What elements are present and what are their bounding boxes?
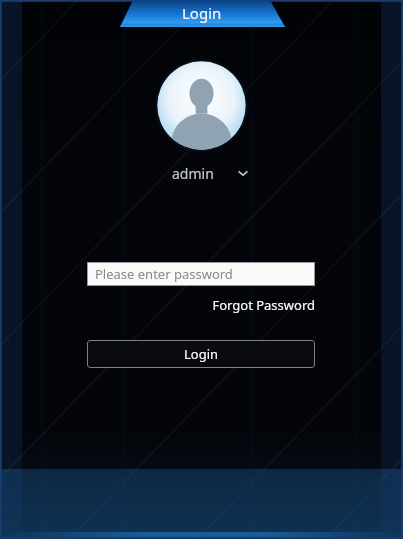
- staticText: Login: [182, 3, 222, 23]
- staticText: Please enter password: [95, 265, 233, 283]
- button[interactable]: Login: [87, 340, 315, 368]
- staticText: admin: [172, 164, 214, 183]
- staticText: Forgot Password: [212, 296, 315, 314]
- button[interactable]: admin: [150, 160, 260, 186]
- button[interactable]: Forgot Password: [195, 294, 315, 316]
- button[interactable]: Please enter password: [87, 262, 315, 286]
- staticText: Login: [184, 345, 219, 363]
- button[interactable]: Login: [0, 0, 403, 30]
- button[interactable]: User avatar: [154, 58, 249, 153]
